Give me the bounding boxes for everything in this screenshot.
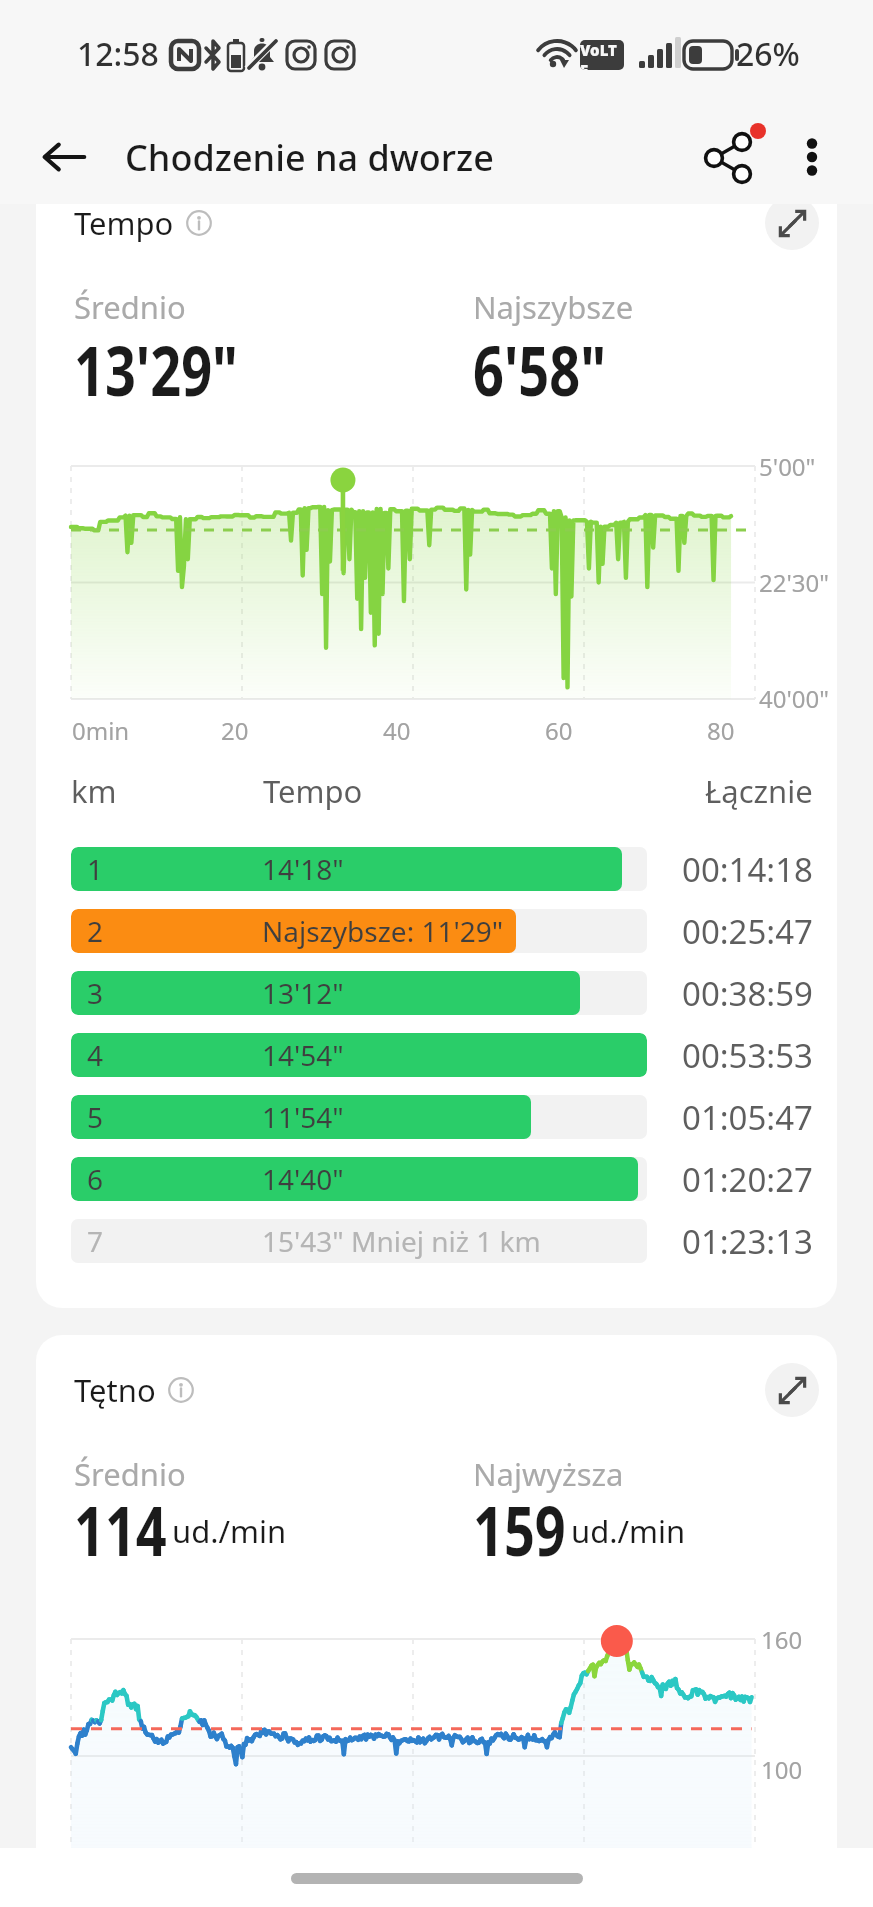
staticText: Średnio xyxy=(74,286,186,328)
button[interactable]: More options xyxy=(778,123,846,191)
staticText: 20 xyxy=(221,714,249,747)
button[interactable]: Expand Tempo xyxy=(765,204,819,250)
staticText: 22'30" xyxy=(759,566,830,599)
staticText: Tempo xyxy=(263,770,363,812)
staticText: 14'54" xyxy=(262,1036,344,1074)
staticText: 1 xyxy=(87,850,104,888)
staticText: Średnio xyxy=(74,1453,186,1495)
staticText: 0min xyxy=(72,714,130,747)
staticText: Najszybsze xyxy=(473,286,634,328)
staticText: 159 xyxy=(473,1483,566,1576)
staticText: 00:25:47 xyxy=(682,909,813,954)
staticText: Najszybsze: 11'29" xyxy=(262,912,504,950)
staticText: 5 xyxy=(87,1098,104,1136)
staticText: 01:20:27 xyxy=(682,1157,813,1202)
staticText: 00:14:18 xyxy=(682,847,813,892)
staticText: 40'00" xyxy=(759,682,830,715)
staticText: 11'54" xyxy=(262,1098,344,1136)
staticText: VoLTE xyxy=(580,40,624,70)
staticText: 00:38:59 xyxy=(682,971,813,1016)
staticText: ud./min xyxy=(571,1510,686,1552)
staticText: 40 xyxy=(383,714,411,747)
staticText: 2 xyxy=(87,912,104,950)
staticText: 3 xyxy=(87,974,104,1012)
staticText: 5'00" xyxy=(759,450,816,483)
staticText: 60 xyxy=(545,714,573,747)
staticText: 13'29" xyxy=(74,323,239,416)
staticText: 12:58 xyxy=(77,32,159,76)
staticText: 114 xyxy=(74,1483,167,1576)
staticText: 7 xyxy=(87,1222,104,1260)
staticText: Łącznie xyxy=(705,770,813,812)
staticText: 14'18" xyxy=(262,850,344,888)
staticText: 160 xyxy=(761,1623,803,1656)
staticText: Najwyższa xyxy=(473,1453,624,1495)
staticText: Chodzenie na dworze xyxy=(125,133,494,182)
staticText: 26% xyxy=(736,32,800,76)
button[interactable]: Back xyxy=(30,123,98,191)
staticText: 13'12" xyxy=(262,974,344,1012)
staticText: Tętno xyxy=(74,1369,156,1411)
staticText: 4 xyxy=(87,1036,104,1074)
staticText: 01:05:47 xyxy=(682,1095,813,1140)
staticText: 6'58" xyxy=(473,323,607,416)
staticText: 80 xyxy=(707,714,735,747)
staticText: km xyxy=(71,770,117,812)
staticText: 00:53:53 xyxy=(682,1033,813,1078)
button[interactable]: Expand Tętno xyxy=(765,1363,819,1417)
staticText: 15'43" Mniej niż 1 km xyxy=(262,1222,541,1260)
staticText: Tempo xyxy=(74,204,174,244)
button[interactable]: Share xyxy=(696,123,764,191)
staticText: ud./min xyxy=(172,1510,287,1552)
staticText: 01:23:13 xyxy=(682,1219,813,1264)
staticText: 100 xyxy=(761,1753,803,1786)
staticText: 14'40" xyxy=(262,1160,344,1198)
staticText: 6 xyxy=(87,1160,104,1198)
